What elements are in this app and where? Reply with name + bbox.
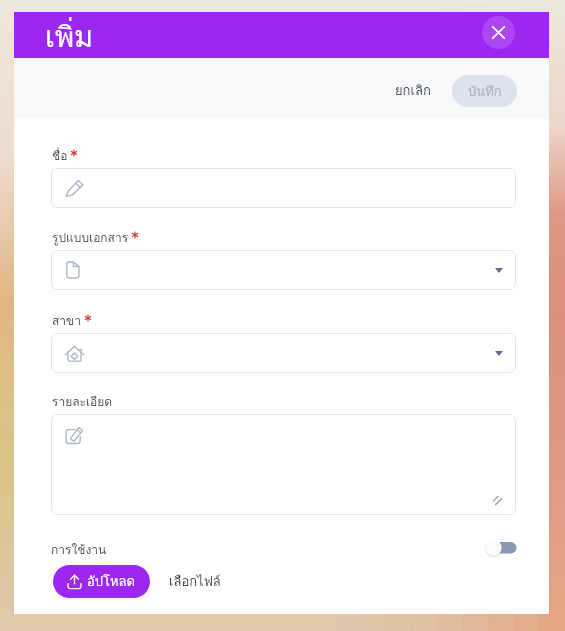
button[interactable]: เลือกไฟล์ bbox=[165, 567, 225, 596]
button[interactable]: Toggle usage bbox=[486, 537, 520, 559]
staticText: สาขา bbox=[52, 311, 82, 330]
button[interactable]: ยกเลิก bbox=[389, 75, 437, 106]
staticText: รายละเอียด bbox=[52, 392, 113, 411]
staticText: เพิ่ม bbox=[45, 14, 94, 60]
button[interactable]: อัปโหลด bbox=[53, 565, 150, 598]
button[interactable] bbox=[51, 250, 516, 290]
staticText: การใช้งาน bbox=[51, 540, 107, 559]
staticText: อัปโหลด bbox=[87, 571, 136, 592]
button[interactable] bbox=[51, 168, 516, 208]
staticText: เลือกไฟล์ bbox=[169, 571, 221, 592]
staticText: ยกเลิก bbox=[395, 80, 431, 101]
button[interactable]: Close bbox=[482, 16, 515, 49]
button[interactable] bbox=[51, 414, 516, 515]
button[interactable]: บันทึก bbox=[452, 75, 517, 107]
staticText: บันทึก bbox=[468, 81, 502, 102]
staticText: รูปแบบเอกสาร bbox=[52, 228, 129, 247]
staticText: ชื่อ bbox=[52, 146, 68, 165]
button[interactable] bbox=[51, 333, 516, 373]
